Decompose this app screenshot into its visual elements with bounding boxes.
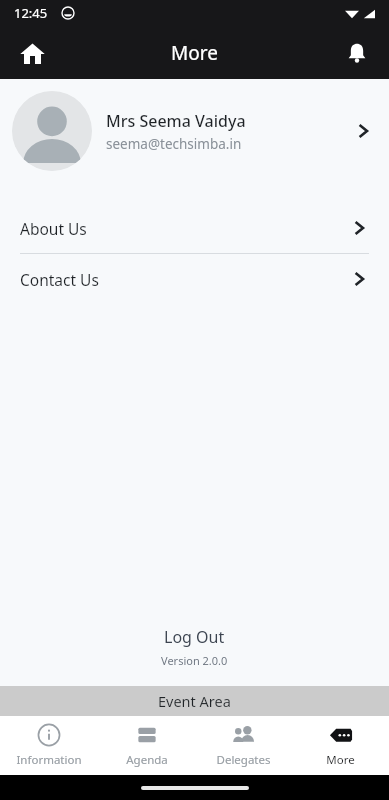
button[interactable]: Mrs Seema Vaidya [0, 79, 389, 183]
button[interactable]: Information [0, 716, 98, 775]
staticText: Contact Us [20, 269, 349, 290]
staticText: More [171, 40, 218, 66]
staticText: Log Out [164, 626, 225, 648]
staticText: seema@techsimba.in [106, 135, 242, 153]
button[interactable]: More [292, 716, 389, 775]
button[interactable]: Notifications [335, 31, 379, 75]
staticText: Event Area [158, 691, 231, 711]
button[interactable]: Agenda [98, 716, 195, 775]
staticText: Information [16, 752, 82, 768]
button[interactable]: Log Out [142, 623, 247, 651]
staticText: About Us [20, 218, 349, 239]
staticText: More [326, 752, 355, 768]
button[interactable]: Home [10, 31, 54, 75]
button[interactable]: Delegates [195, 716, 292, 775]
staticText: Agenda [126, 752, 168, 768]
staticText: 12:45 [14, 4, 48, 22]
button[interactable]: About Us [0, 203, 389, 253]
button[interactable]: Contact Us [0, 254, 389, 304]
staticText: Mrs Seema Vaidya [106, 110, 246, 132]
staticText: Version 2.0.0 [161, 653, 228, 668]
staticText: Delegates [216, 752, 271, 768]
